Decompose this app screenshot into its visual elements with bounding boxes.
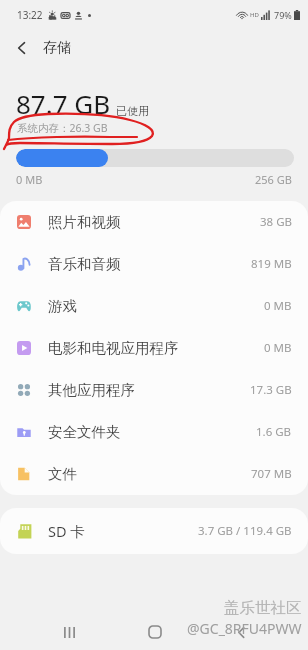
staticText: 文件	[48, 465, 77, 483]
staticText: 音乐和音频	[48, 255, 121, 273]
staticText: 存储	[43, 39, 71, 57]
staticText: HD	[250, 11, 259, 19]
staticText: 13:22	[17, 8, 43, 22]
staticText: 0 MB	[16, 172, 43, 187]
staticText: 17.3 GB	[250, 382, 292, 398]
staticText: 1.6 GB	[256, 424, 292, 440]
staticText: @GC_8RFU4PWW	[187, 619, 302, 638]
button[interactable]: 文件	[0, 453, 308, 495]
staticText: 87.7 GB	[16, 86, 111, 121]
button[interactable]: 电影和电视应用程序	[0, 327, 308, 369]
button[interactable]: Back	[8, 34, 36, 62]
button[interactable]: Recent apps	[55, 620, 83, 644]
staticText: 电影和电视应用程序	[48, 339, 179, 357]
button[interactable]: SD 卡	[0, 508, 308, 554]
staticText: 安全文件夹	[48, 423, 121, 441]
staticText: 256 GB	[255, 172, 292, 187]
staticText: 系统内存：26.3 GB	[17, 121, 108, 135]
button[interactable]: 其他应用程序	[0, 369, 308, 411]
button[interactable]: 游戏	[0, 285, 308, 327]
button[interactable]: 照片和视频	[0, 201, 308, 243]
staticText: 其他应用程序	[48, 381, 135, 399]
staticText: 已使用	[116, 104, 149, 118]
staticText: 79%	[274, 9, 292, 21]
staticText: 0 MB	[264, 298, 292, 314]
button[interactable]: Back	[227, 620, 255, 644]
staticText: 游戏	[48, 297, 77, 315]
staticText: 照片和视频	[48, 213, 121, 231]
staticText: 38 GB	[260, 214, 292, 230]
button[interactable]: 安全文件夹	[0, 411, 308, 453]
staticText: 0 MB	[264, 340, 292, 356]
staticText: 819 MB	[251, 256, 292, 272]
button[interactable]: Home	[141, 620, 169, 644]
staticText: SD 卡	[48, 521, 85, 541]
staticText: 盖乐世社区	[224, 598, 302, 618]
button[interactable]: 音乐和音频	[0, 243, 308, 285]
staticText: 3.7 GB / 119.4 GB	[198, 523, 292, 539]
staticText: 707 MB	[251, 466, 292, 482]
